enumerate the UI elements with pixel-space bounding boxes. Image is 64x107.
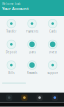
button[interactable]: Invest [42,40,63,54]
staticText: Bills [8,71,14,75]
button[interactable]: Payments [22,19,42,33]
button[interactable]: Deposit [1,40,22,54]
button[interactable]: Loans [22,40,42,54]
button[interactable]: Camera [36,94,43,101]
staticText: Welcome back [2,2,20,6]
staticText: Your Account [2,6,29,11]
staticText: Invest [49,50,57,54]
staticText: Rewards [27,71,37,75]
button[interactable]: Bills [1,60,22,75]
button[interactable]: Browser [51,94,58,101]
staticText: Transfer [6,30,16,33]
button[interactable]: Transfer [1,19,22,33]
staticText: Payments [26,30,38,33]
button[interactable]: Messages [6,94,13,101]
staticText: Support [47,71,58,75]
staticText: Deposit [6,50,17,54]
staticText: Loans [28,50,35,54]
button[interactable]: Files [21,94,28,101]
staticText: Cards [49,30,56,33]
button[interactable]: Rewards [22,60,42,75]
button[interactable]: Support [42,60,63,75]
button[interactable]: Cards [42,19,63,33]
